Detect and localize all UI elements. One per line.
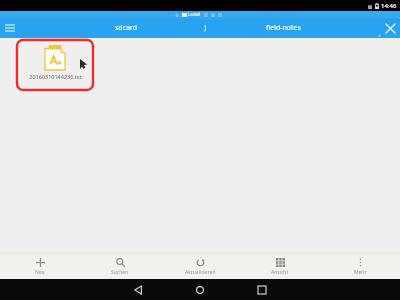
staticText: 20160310144236.txt <box>29 73 82 80</box>
button[interactable]: field-notes <box>217 18 350 38</box>
staticText: Ansicht <box>271 269 289 276</box>
button[interactable]: Close <box>380 18 400 38</box>
button[interactable]: Home <box>183 279 217 300</box>
staticText: sdcard <box>115 23 138 33</box>
staticText: ) <box>204 23 207 33</box>
staticText: Neu <box>35 269 45 276</box>
button[interactable]: Suchen <box>80 254 160 279</box>
button[interactable]: Ansicht <box>240 254 320 279</box>
button[interactable]: 20160310144236.txt <box>17 40 93 90</box>
staticText: Aktualisieren <box>185 269 216 276</box>
button[interactable]: Back <box>121 279 155 300</box>
staticText: field-notes <box>266 23 301 33</box>
staticText: 14:46 <box>381 2 397 10</box>
staticText: Mehr <box>354 269 367 276</box>
button[interactable]: Mehr <box>320 254 400 279</box>
button[interactable]: Menu <box>0 18 20 38</box>
button[interactable]: Recents <box>245 279 279 300</box>
staticText: Lokal <box>188 11 201 18</box>
button[interactable]: Neu <box>0 254 80 279</box>
button[interactable]: Aktualisieren <box>160 254 240 279</box>
button[interactable]: sdcard <box>60 18 193 38</box>
staticText: Suchen <box>111 269 129 276</box>
